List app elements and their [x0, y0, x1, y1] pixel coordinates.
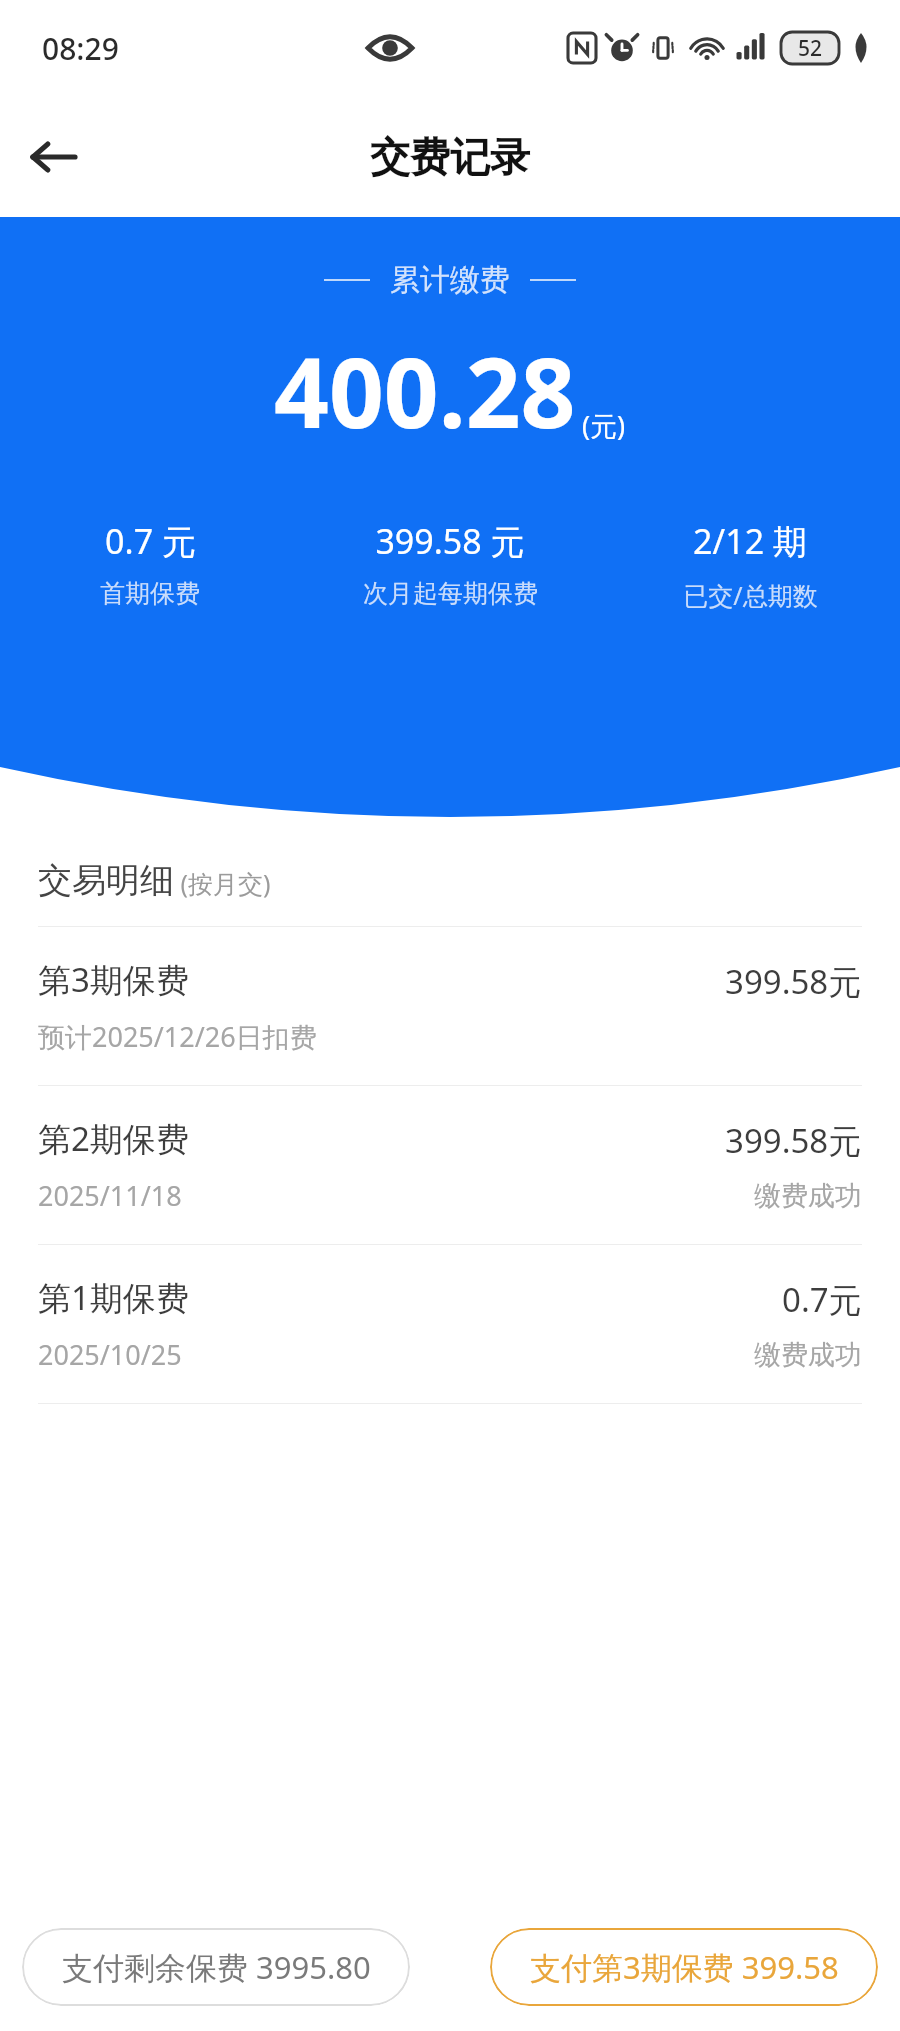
staticText: 交易明细 — [38, 859, 174, 902]
staticText: 52 — [798, 34, 823, 63]
staticText: 399.58元 — [725, 959, 862, 1004]
other: Eye — [368, 33, 412, 63]
staticText: 第2期保费 — [38, 1116, 189, 1161]
staticText: 交费记录 — [370, 132, 530, 182]
button[interactable]: 第2期保费 — [0, 1086, 900, 1244]
staticText: (元) — [582, 407, 626, 444]
button[interactable]: 第3期保费 — [0, 927, 900, 1085]
staticText: 次月起每期保费 — [363, 578, 538, 609]
staticText: 缴费成功 — [754, 1179, 862, 1213]
staticText: 2/12 期 — [693, 518, 807, 564]
staticText: 399.58元 — [725, 1118, 862, 1163]
staticText: 0.7 元 — [105, 518, 196, 564]
staticText: 预计2025/12/26日扣费 — [38, 1018, 317, 1055]
staticText: 累计缴费 — [390, 261, 510, 299]
staticText: 缴费成功 — [754, 1338, 862, 1372]
staticText: 399.58 元 — [375, 518, 525, 564]
staticText: 第3期保费 — [38, 957, 189, 1002]
button[interactable]: 支付第3期保费 399.58 — [490, 1928, 878, 2006]
staticText: 已交/总期数 — [683, 578, 818, 612]
staticText: 首期保费 — [100, 578, 200, 609]
button[interactable]: 第1期保费 — [0, 1245, 900, 1403]
staticText: 0.7元 — [782, 1277, 862, 1322]
staticText: 2025/10/25 — [38, 1336, 182, 1373]
staticText: 支付第3期保费 399.58 — [530, 1946, 839, 1988]
staticText: 400.28 — [274, 325, 576, 456]
staticText: (按月交) — [174, 866, 271, 900]
staticText: 2025/11/18 — [38, 1177, 182, 1214]
button[interactable]: Back — [14, 118, 92, 196]
staticText: 支付剩余保费 3995.80 — [62, 1946, 371, 1988]
button[interactable]: 支付剩余保费 3995.80 — [22, 1928, 410, 2006]
staticText: 08:29 — [42, 28, 119, 69]
staticText: 第1期保费 — [38, 1275, 189, 1320]
